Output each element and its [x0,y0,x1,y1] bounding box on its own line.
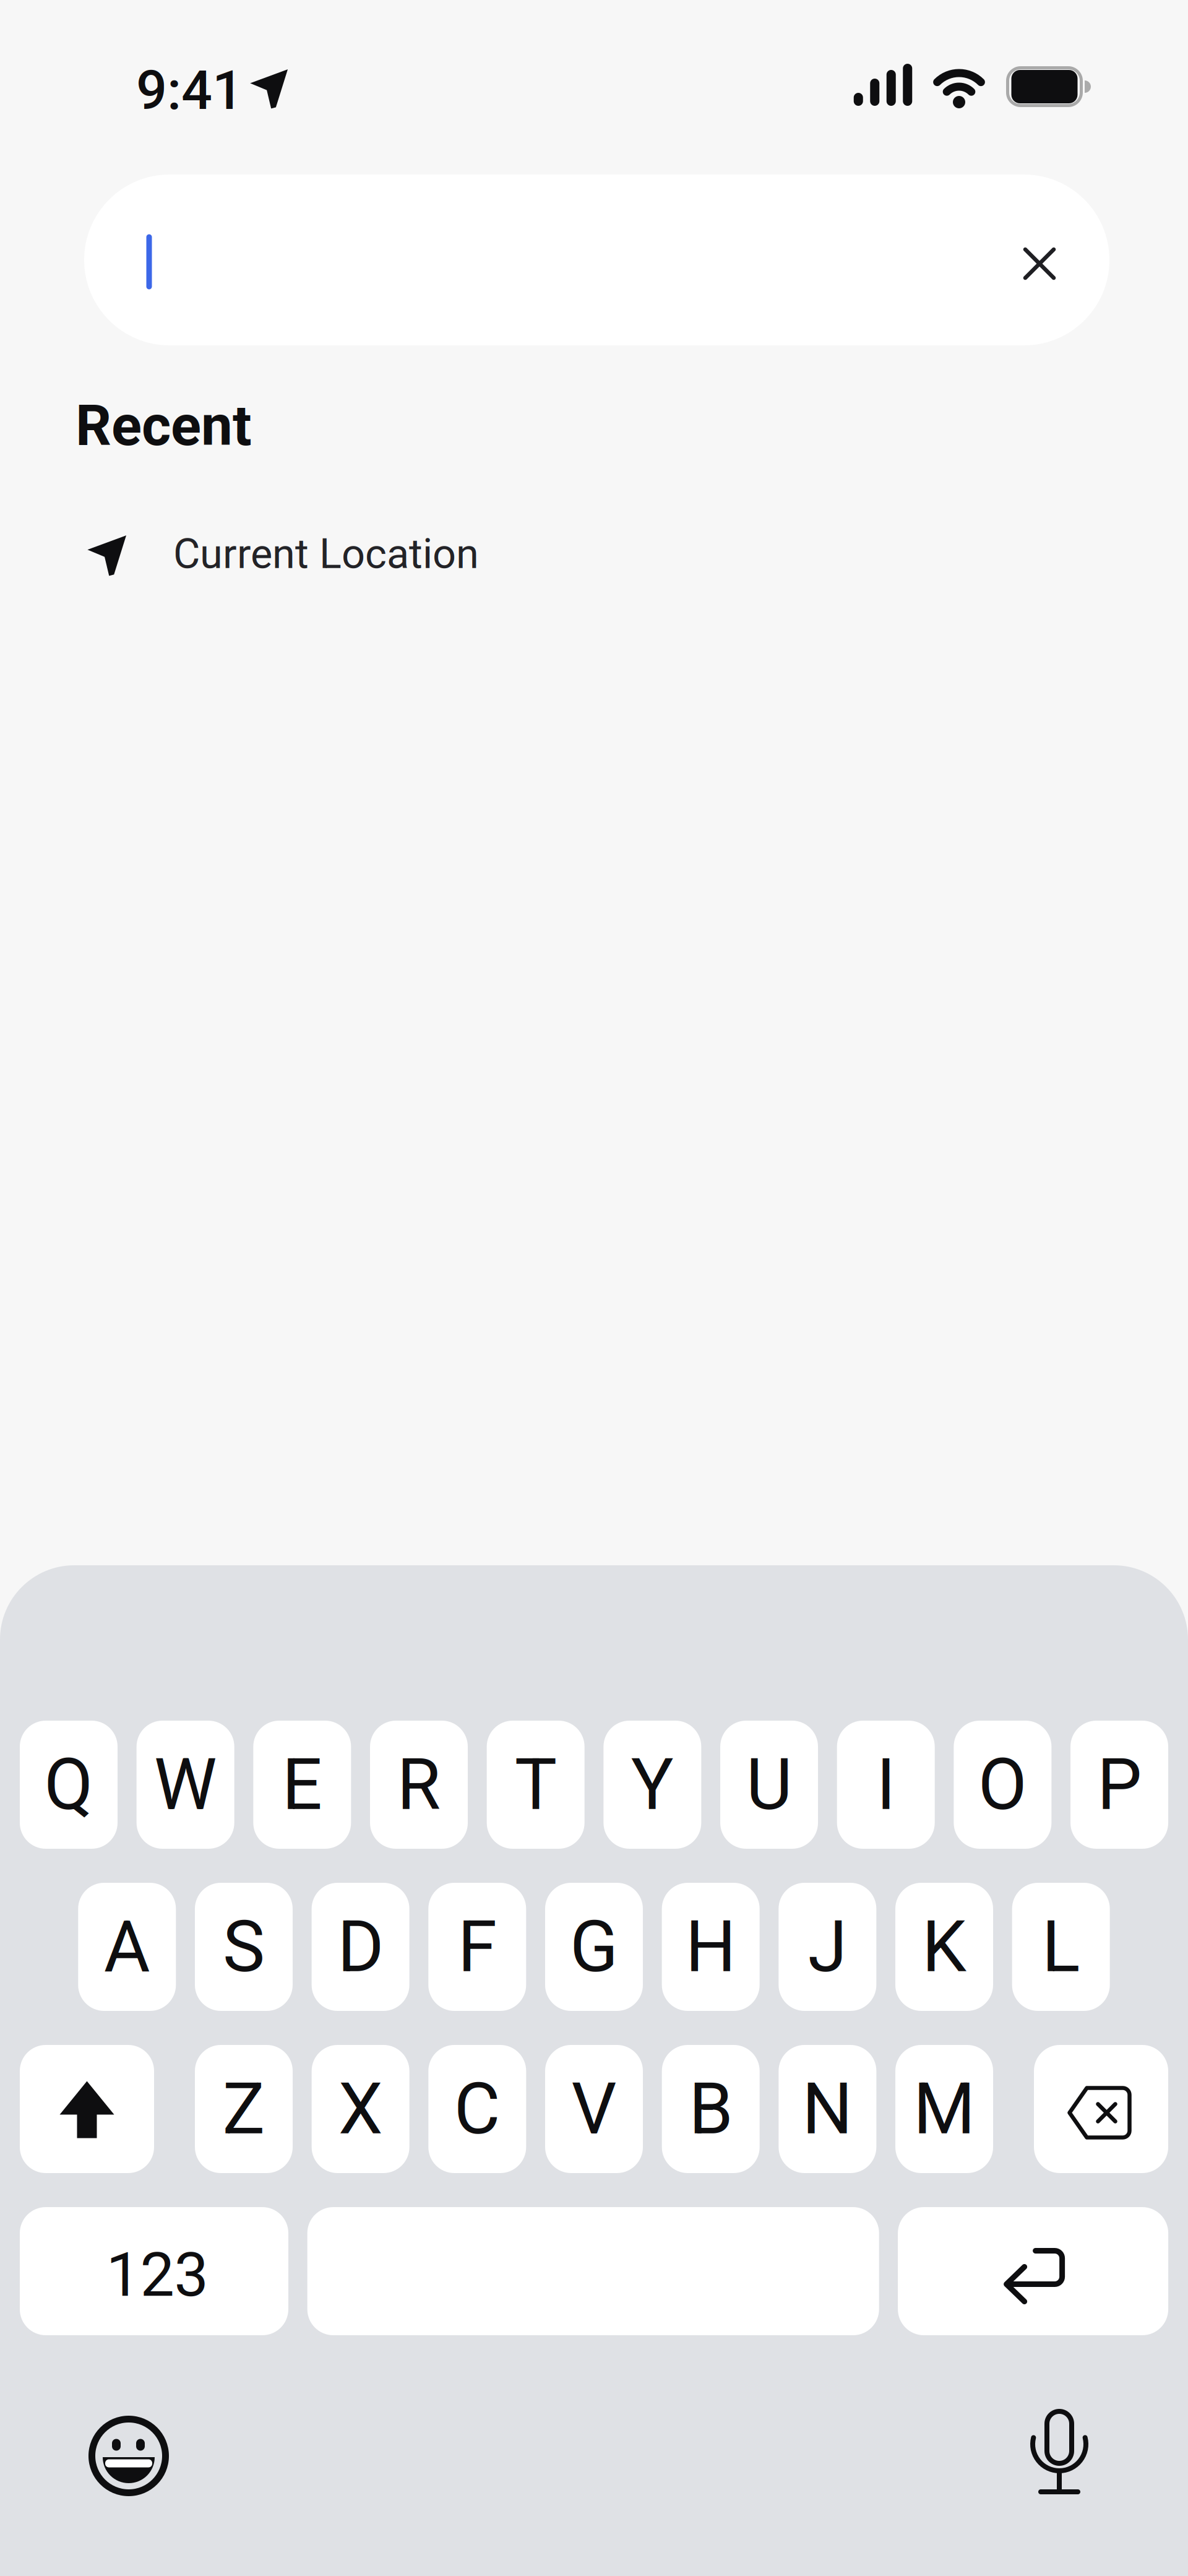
button[interactable]: S [195,1883,293,2011]
staticText: F [458,1905,497,1988]
button[interactable] [898,2207,1168,2335]
button[interactable]: X [312,2045,409,2173]
button[interactable]: K [895,1883,993,2011]
button[interactable]: H [662,1883,760,2011]
staticText: K [922,1905,966,1988]
staticText: H [685,1905,736,1988]
staticText: P [1097,1743,1142,1826]
staticText: A [104,1905,150,1988]
button[interactable] [1034,2045,1168,2173]
staticText: O [978,1743,1027,1826]
staticText: D [337,1905,384,1988]
staticText: S [223,1905,265,1988]
button[interactable]: R [370,1721,468,1849]
button[interactable]: M [895,2045,993,2173]
button[interactable]: O [954,1721,1052,1849]
button[interactable] [1009,233,1070,295]
staticText: V [571,2067,617,2151]
staticText: C [454,2067,500,2151]
staticText: Recent [75,393,252,459]
staticText: T [515,1743,557,1826]
button[interactable]: T [487,1721,585,1849]
button[interactable]: Y [603,1721,701,1849]
staticText: I [876,1743,895,1826]
button[interactable]: N [779,2045,876,2173]
button[interactable]: Current Location [74,518,569,592]
button[interactable]: L [1012,1883,1110,2011]
button[interactable] [85,2413,172,2499]
button[interactable] [1025,2405,1093,2498]
staticText: L [1042,1905,1080,1988]
staticText: X [338,2067,383,2151]
button[interactable]: A [78,1883,176,2011]
staticText: N [802,2067,853,2151]
staticText: E [282,1743,322,1826]
staticText: M [913,2067,975,2151]
button[interactable]: 123 [20,2207,288,2335]
staticText: Current Location [173,530,479,578]
staticText: U [746,1743,792,1826]
staticText: 123 [106,2239,208,2311]
button[interactable]: F [428,1883,526,2011]
staticText: Y [631,1743,674,1826]
button[interactable]: P [1070,1721,1168,1849]
staticText: B [689,2067,733,2151]
staticText: G [570,1905,618,1988]
button[interactable]: C [428,2045,526,2173]
button[interactable]: V [545,2045,643,2173]
button[interactable]: J [779,1883,876,2011]
staticText: Q [44,1743,93,1826]
staticText: 9:41 [136,58,243,122]
button[interactable]: U [720,1721,818,1849]
button[interactable]: E [253,1721,351,1849]
staticText: W [154,1743,217,1826]
button[interactable]: D [312,1883,409,2011]
button[interactable] [84,175,1109,345]
button[interactable] [20,2045,154,2173]
button[interactable]: G [545,1883,643,2011]
staticText: R [397,1743,441,1826]
staticText: Z [222,2067,265,2151]
button[interactable]: Q [20,1721,118,1849]
staticText: J [808,1905,847,1988]
button[interactable]: I [837,1721,935,1849]
button[interactable]: B [662,2045,760,2173]
button[interactable] [307,2207,879,2335]
button[interactable]: Z [195,2045,293,2173]
button[interactable]: W [137,1721,234,1849]
